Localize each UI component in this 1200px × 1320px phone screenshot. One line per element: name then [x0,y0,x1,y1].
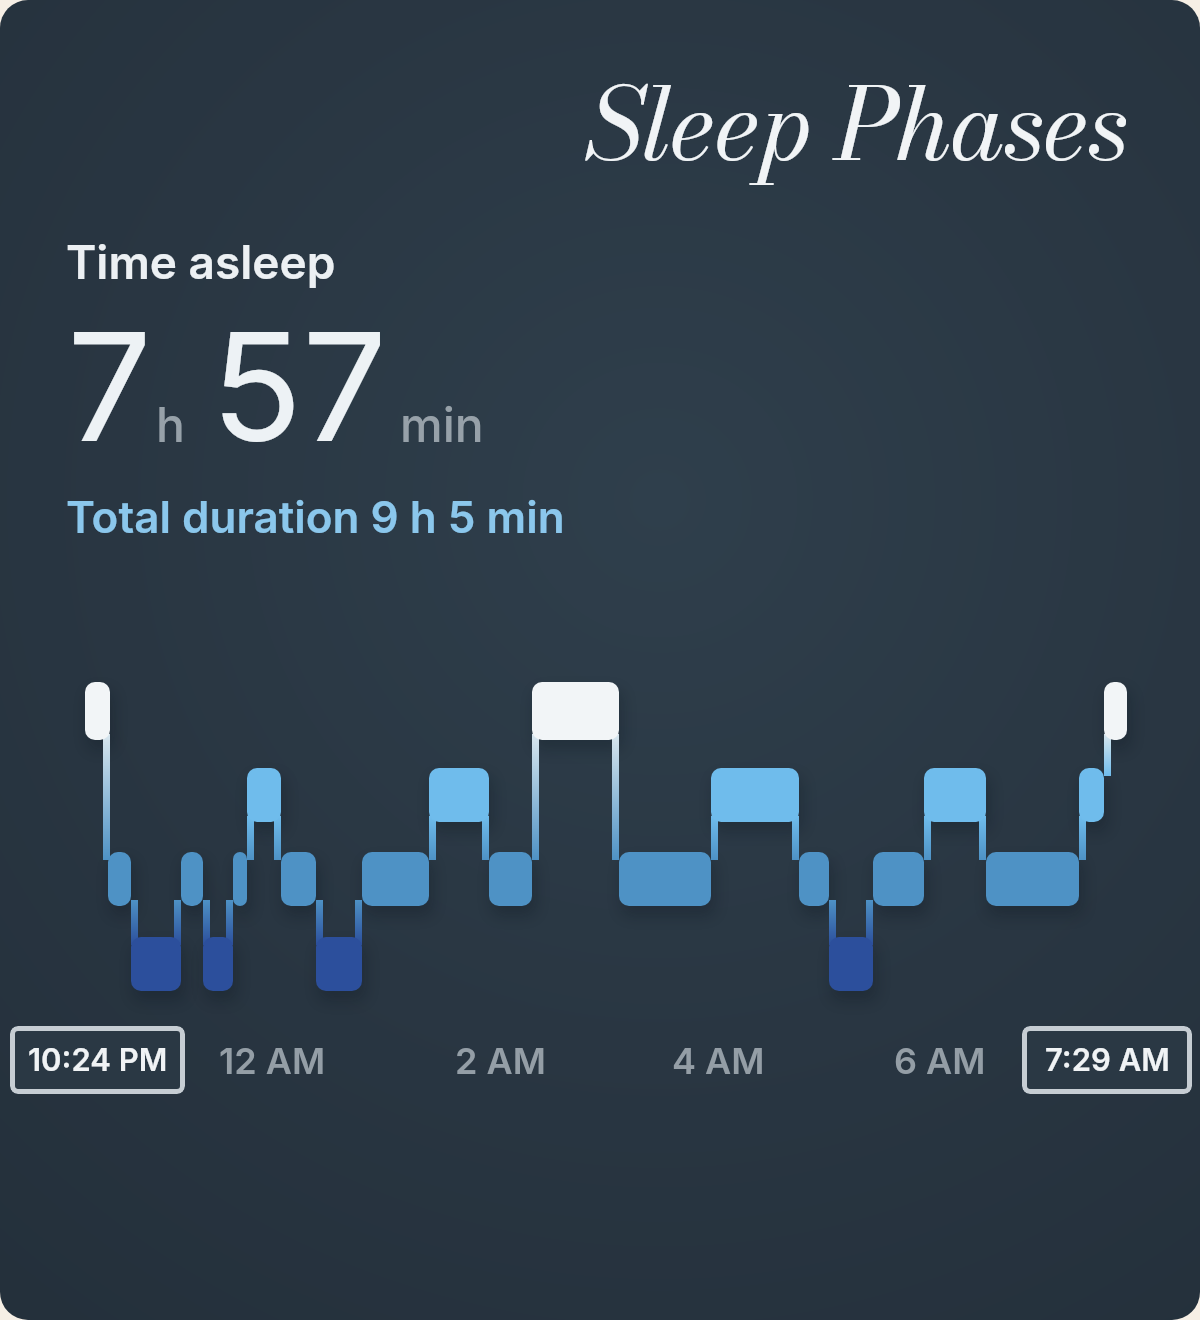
staticText: 57 [211,296,388,477]
staticText: 7 [67,296,152,477]
staticText: Time asleep [66,234,336,290]
staticText: 6 AM [894,1039,986,1083]
button[interactable]: 7:29 AM [1022,1026,1192,1094]
staticText: Sleep Phases [588,47,1128,200]
staticText: 4 AM [672,1039,765,1083]
staticText: h [156,395,185,453]
staticText: 2 AM [455,1039,546,1083]
staticText: 7:29 AM [1045,1041,1170,1079]
button[interactable]: 10:24 PM [10,1026,185,1094]
staticText: 10:24 PM [28,1041,168,1079]
staticText: min [400,395,484,453]
staticText: 12 AM [219,1039,326,1083]
staticText: Total duration 9 h 5 min [66,490,565,543]
